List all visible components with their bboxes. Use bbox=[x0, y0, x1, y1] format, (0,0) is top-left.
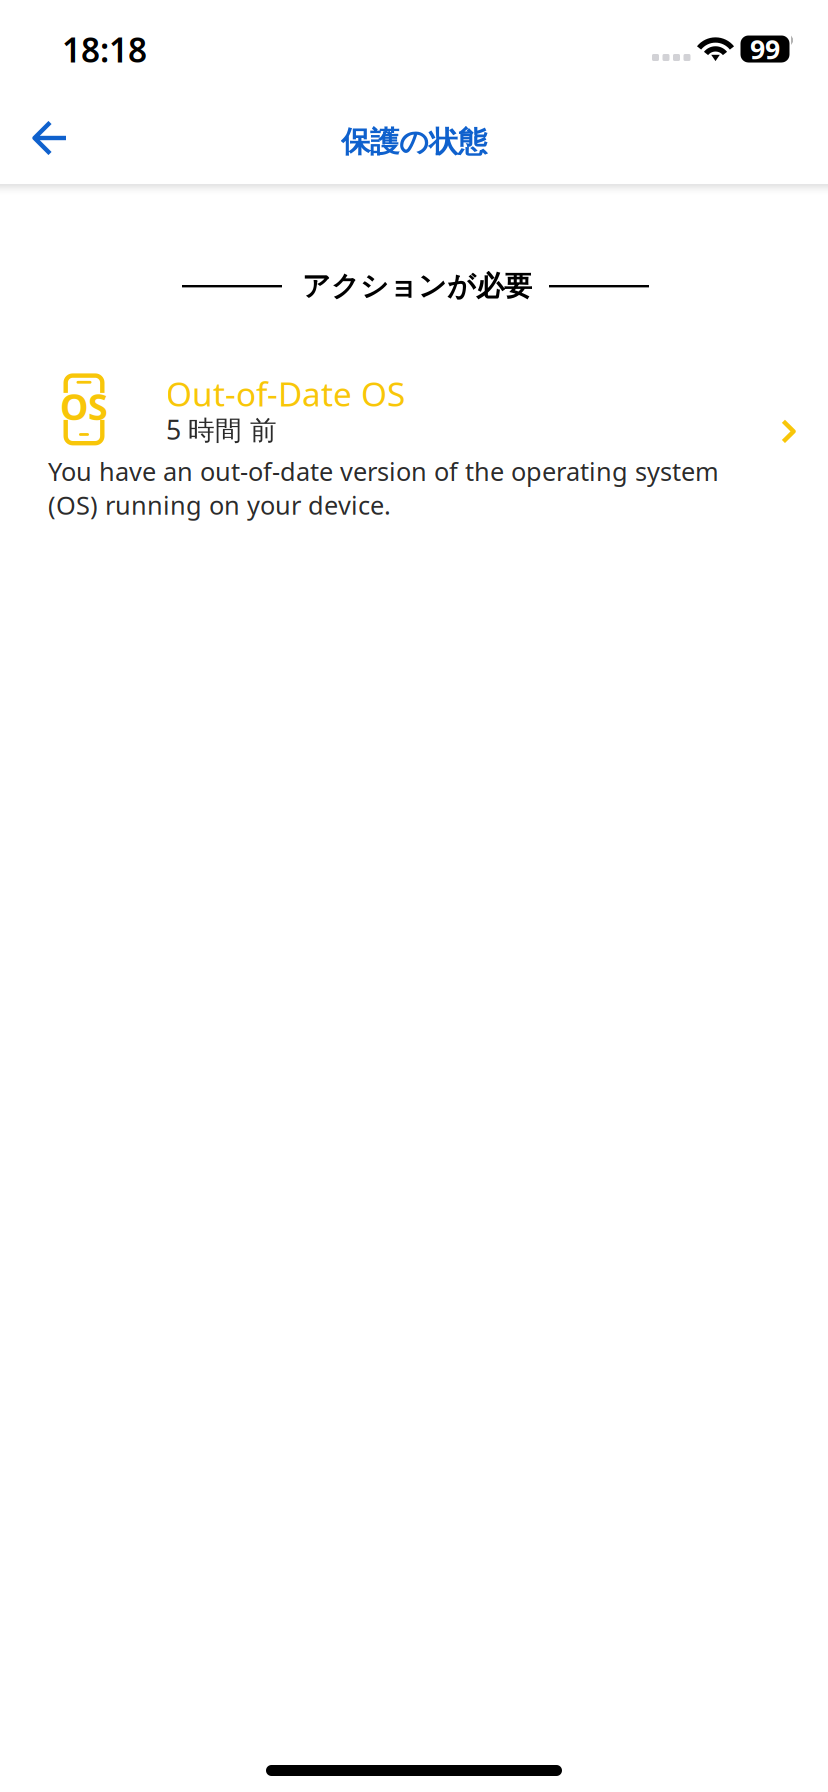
staticText: 5 時間 前 bbox=[166, 412, 277, 447]
staticText: 18:18 bbox=[62, 27, 147, 72]
staticText: Out-of-Date OS bbox=[166, 372, 405, 416]
button[interactable]: OS bbox=[0, 370, 828, 522]
staticText: 保護の状態 bbox=[341, 124, 487, 160]
button[interactable]: Back bbox=[0, 96, 92, 179]
staticText: 99 bbox=[750, 31, 780, 67]
staticText: You have an out-of-date version of the o… bbox=[48, 454, 719, 522]
staticText: アクションが必要 bbox=[302, 269, 532, 303]
staticText: OS bbox=[60, 382, 108, 430]
